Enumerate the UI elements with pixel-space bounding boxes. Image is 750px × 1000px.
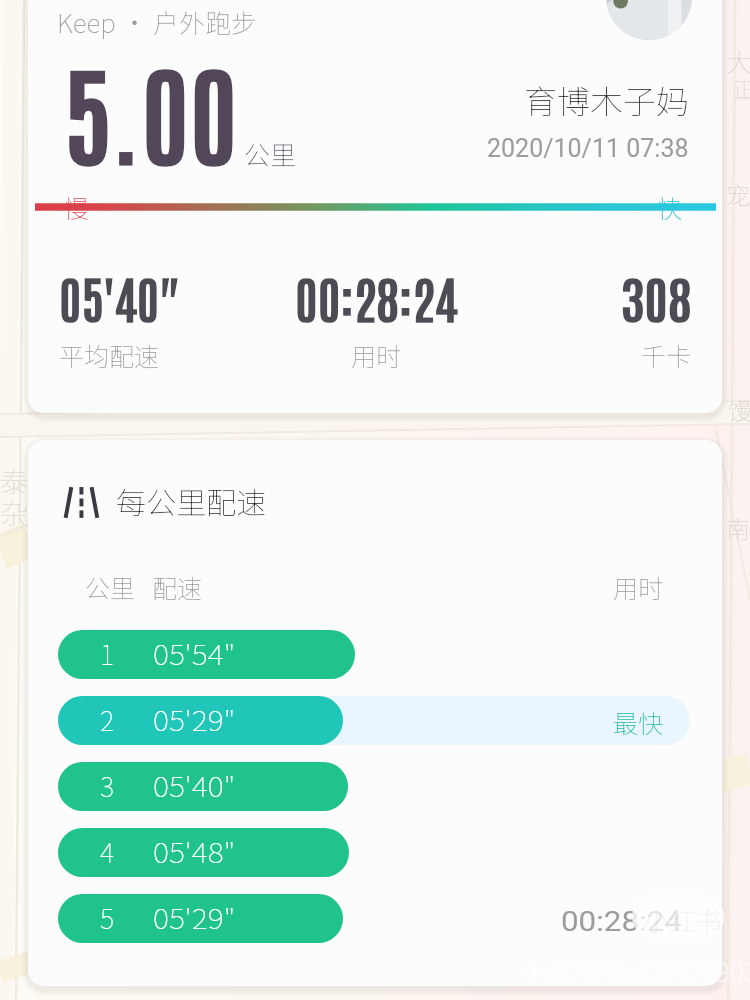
button[interactable]: User avatar — [606, 0, 692, 40]
button[interactable] — [58, 630, 355, 679]
staticText: 2020/10/11 07:38 — [487, 134, 689, 163]
staticText: 2 — [100, 700, 115, 739]
button[interactable] — [58, 894, 343, 943]
button[interactable] — [58, 762, 348, 811]
staticText: 每公里配速 — [116, 479, 266, 522]
staticText: 泰 — [0, 460, 29, 501]
staticText: 馒 — [728, 392, 750, 427]
staticText: 千卡 — [641, 337, 692, 373]
staticText: 5.00 — [63, 40, 238, 178]
staticText: 用时 — [351, 337, 402, 373]
button[interactable] — [28, 0, 722, 413]
staticText: 慢 — [64, 189, 90, 225]
staticText: 05'40" — [59, 264, 179, 329]
staticText: 05'29" — [153, 898, 235, 937]
staticText: 宠物 — [726, 176, 750, 211]
staticText: 公里 — [85, 569, 136, 605]
staticText: 3 — [100, 766, 115, 805]
staticText: 正 — [733, 72, 750, 104]
staticText: 5 — [100, 898, 115, 937]
staticText: 大 — [726, 42, 750, 80]
staticText: 用时 — [613, 569, 664, 605]
staticText: 小红书号:429778903 — [521, 952, 750, 990]
staticText: 育博木子妈 — [524, 76, 689, 124]
staticText: 公里 — [244, 135, 297, 173]
staticText: 快 — [657, 189, 683, 225]
staticText: 杂 — [0, 492, 29, 533]
staticText: 平均配速 — [59, 337, 160, 373]
button[interactable] — [58, 828, 349, 877]
staticText: 05'40" — [153, 766, 235, 805]
staticText: 小红书 — [643, 901, 722, 939]
button[interactable] — [58, 696, 343, 745]
staticText: 1 — [100, 634, 115, 673]
staticText: 308 — [621, 264, 692, 329]
staticText: 00:28:24 — [561, 905, 682, 938]
staticText: 05'29" — [153, 700, 235, 739]
button[interactable] — [28, 440, 722, 986]
staticText: 00:28:24 — [295, 264, 457, 329]
staticText: 05'48" — [153, 832, 235, 871]
staticText: 最快 — [613, 704, 664, 740]
staticText: 配速 — [152, 569, 203, 605]
staticText: Keep · 户外跑步 — [57, 3, 258, 41]
staticText: 4 — [100, 832, 115, 871]
staticText: 南区 — [726, 510, 750, 545]
staticText: 05'54" — [153, 634, 235, 673]
